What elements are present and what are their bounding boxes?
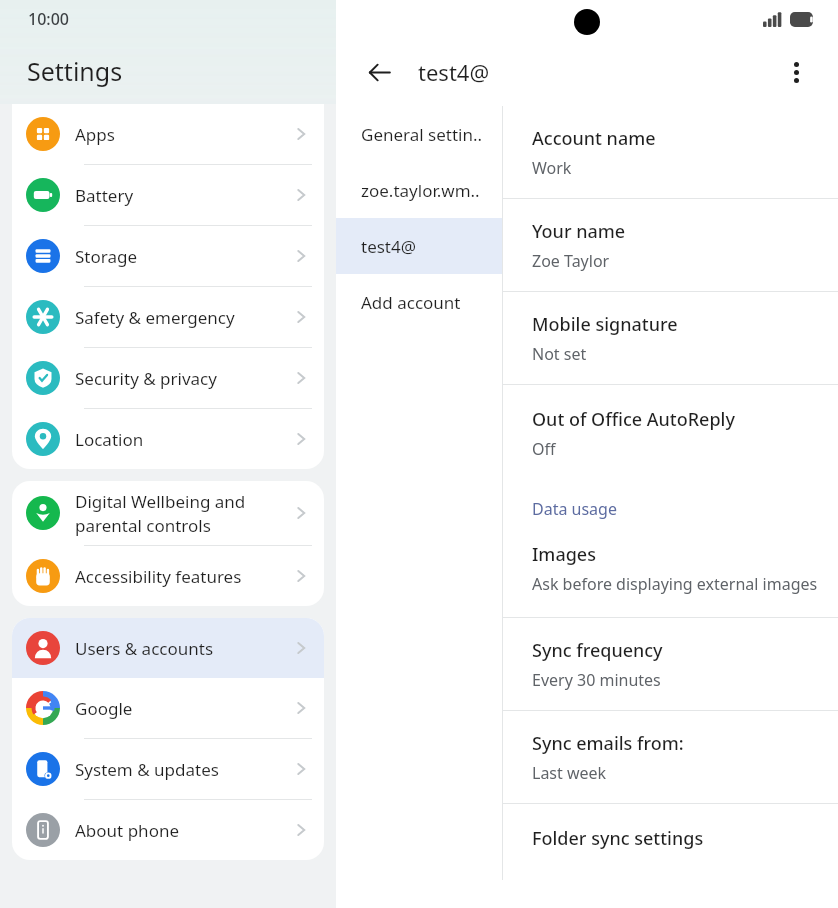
staticText: Security & privacy [75, 367, 292, 390]
button[interactable]: General settin.. [336, 106, 502, 162]
staticText: Sync emails from: [532, 731, 684, 756]
button[interactable]: test4@ [336, 218, 502, 274]
staticText: Last week [532, 762, 607, 784]
staticText: Out of Office AutoReply [532, 407, 735, 432]
button[interactable]: Location [12, 409, 324, 469]
staticText: Account name [532, 126, 656, 151]
staticText: Every 30 minutes [532, 669, 661, 691]
staticText: Digital Wellbeing and parental controls [75, 490, 292, 537]
staticText: Accessibility features [75, 565, 292, 588]
button[interactable]: Mobile signature [503, 292, 838, 384]
staticText: Safety & emergency [75, 306, 292, 329]
staticText: Users & accounts [75, 637, 292, 660]
button[interactable]: System & updates [12, 739, 324, 799]
staticText: Settings [27, 54, 123, 88]
staticText: Google [75, 697, 292, 720]
staticText: Data usage [532, 498, 617, 520]
staticText: Images [532, 542, 596, 567]
button[interactable]: Safety & emergency [12, 287, 324, 347]
button[interactable]: More options [774, 50, 818, 94]
staticText: 10:00 [28, 8, 69, 30]
staticText: Storage [75, 245, 292, 268]
staticText: Work [532, 157, 572, 179]
staticText: Folder sync settings [532, 826, 704, 851]
staticText: Your name [532, 219, 626, 244]
staticText: General settin.. [361, 123, 483, 146]
button[interactable]: Security & privacy [12, 348, 324, 408]
staticText: test4@ [418, 57, 490, 87]
staticText: Ask before displaying external images [532, 573, 818, 595]
staticText: test4@ [361, 235, 417, 258]
button[interactable]: Back [356, 49, 402, 95]
staticText: Mobile signature [532, 312, 678, 337]
staticText: Location [75, 428, 292, 451]
staticText: zoe.taylor.wm.. [361, 179, 480, 202]
button[interactable]: Out of Office AutoReply [503, 385, 838, 617]
button[interactable]: Folder sync settings [503, 804, 838, 874]
button[interactable]: Accessibility features [12, 546, 324, 606]
button[interactable]: Users & accounts [12, 618, 324, 678]
button[interactable]: Apps [12, 104, 324, 164]
button[interactable]: About phone [12, 800, 324, 860]
button[interactable]: Sync frequency [503, 618, 838, 710]
staticText: Battery [75, 184, 292, 207]
button[interactable]: Your name [503, 199, 838, 291]
staticText: Not set [532, 343, 587, 365]
button[interactable]: Digital Wellbeing and parental controls [12, 481, 324, 545]
staticText: Apps [75, 123, 292, 146]
staticText: Add account [361, 291, 461, 314]
button[interactable]: Storage [12, 226, 324, 286]
button[interactable]: Account name [503, 106, 838, 198]
staticText: About phone [75, 819, 292, 842]
button[interactable]: Battery [12, 165, 324, 225]
button[interactable]: Sync emails from: [503, 711, 838, 803]
button[interactable]: Add account [336, 274, 502, 330]
staticText: System & updates [75, 758, 292, 781]
staticText: Off [532, 438, 556, 460]
button[interactable]: Google [12, 678, 324, 738]
staticText: Zoe Taylor [532, 250, 610, 272]
button[interactable]: zoe.taylor.wm.. [336, 162, 502, 218]
staticText: Sync frequency [532, 638, 663, 663]
